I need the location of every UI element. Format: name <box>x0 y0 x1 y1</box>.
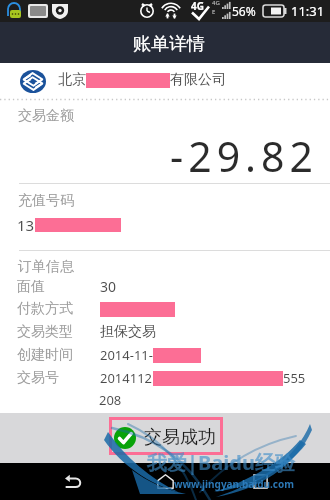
staticText: 北京 <box>58 71 86 89</box>
button[interactable]: Home <box>144 463 186 500</box>
staticText: 付款方式 <box>17 300 100 318</box>
staticText: E <box>212 8 216 16</box>
staticText: 交易类型 <box>17 323 100 341</box>
button[interactable]: Back <box>52 463 94 500</box>
staticText: 账单详情 <box>133 33 205 56</box>
staticText: 2014112 <box>100 369 153 387</box>
staticText: 4G <box>191 0 204 13</box>
staticText: 交易金额 <box>18 107 74 125</box>
staticText: 面值 <box>17 278 100 296</box>
staticText: 4G <box>212 0 220 7</box>
staticText: -29.82 <box>0 128 318 184</box>
staticText: 充值号码 <box>18 192 74 210</box>
staticText: 交易号 <box>17 369 100 387</box>
staticText: 56% <box>232 3 256 19</box>
staticText: 555 <box>283 369 306 387</box>
staticText: www.jingyan.baidu.com <box>174 477 294 491</box>
staticText: 订单信息 <box>18 258 74 276</box>
staticText: 担保交易 <box>100 323 156 341</box>
staticText: 208 <box>99 391 122 409</box>
button[interactable]: Recents <box>239 463 281 500</box>
staticText: 2014-11- <box>100 346 153 364</box>
button[interactable]: 交易成功 <box>109 417 223 455</box>
staticText: 创建时间 <box>17 346 100 364</box>
staticText: 有限公司 <box>170 71 226 89</box>
staticText: 我爱|Baidu经验 <box>147 449 295 476</box>
staticText: 交易成功 <box>144 426 216 449</box>
staticText: 11:31 <box>291 2 325 20</box>
staticText: 13 <box>17 215 35 235</box>
staticText: 30 <box>100 277 117 296</box>
